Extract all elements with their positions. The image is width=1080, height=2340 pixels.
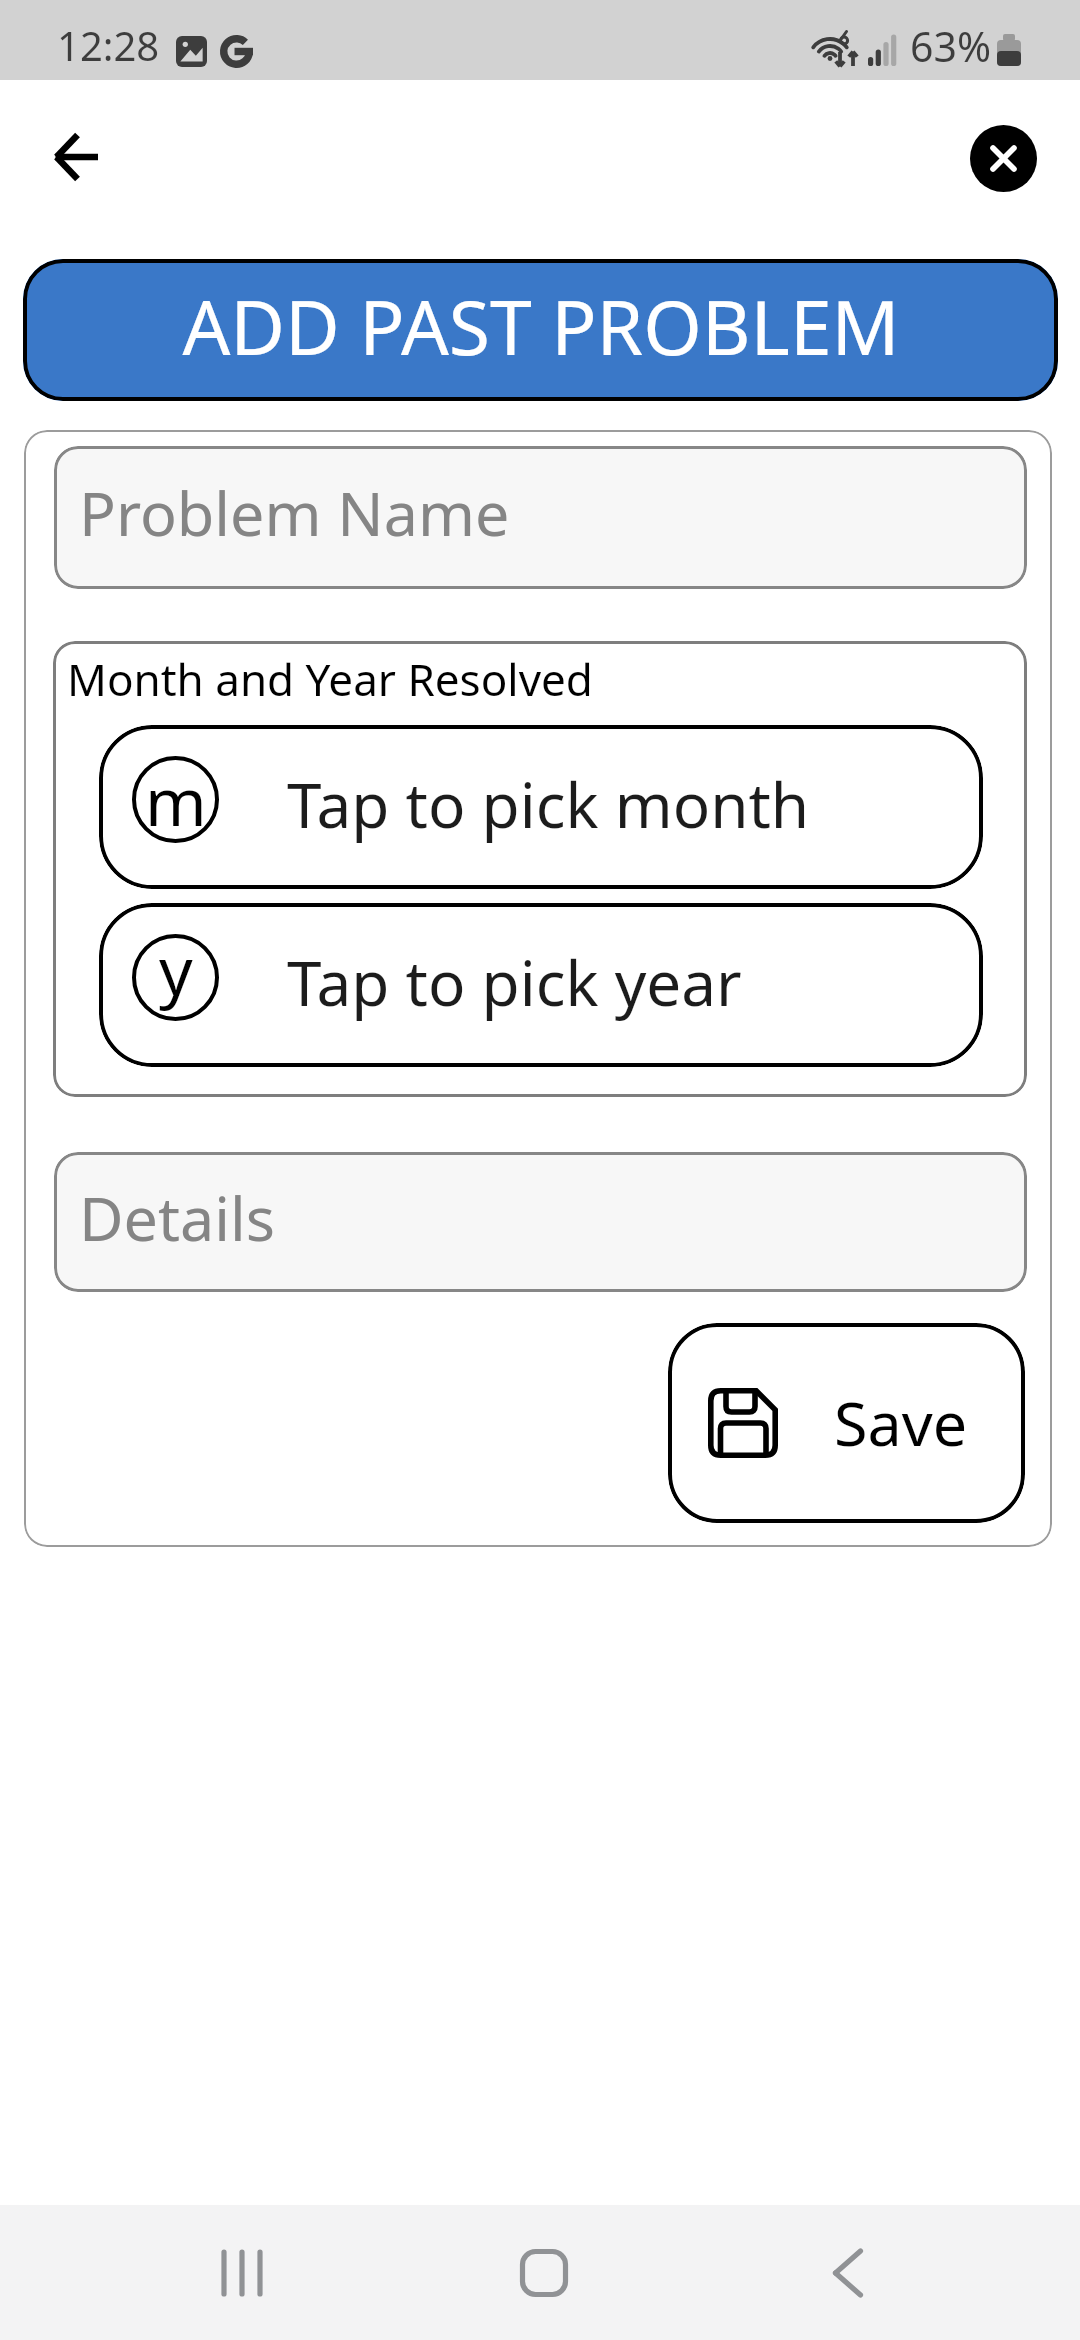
staticText: Details [79,1176,275,1259]
button[interactable]: Problem Name [54,446,1027,589]
staticText: y [159,924,193,1011]
staticText: ADD PAST PROBLEM [182,275,900,377]
staticText: m [145,755,207,842]
button[interactable]: Close [970,125,1037,192]
staticText: Tap to pick year [287,940,742,1024]
button[interactable]: Navigate up [30,109,126,205]
button[interactable]: m [99,725,983,889]
staticText: Save [834,1381,968,1464]
button[interactable]: Details [54,1152,1027,1292]
button[interactable]: ADD PAST PROBLEM [23,259,1058,401]
staticText: 12:28 [57,18,160,72]
button[interactable]: Home [474,2205,614,2340]
staticText: 63% [910,18,991,74]
staticText: Month and Year Resolved [67,649,593,709]
button[interactable]: Recent apps [172,2205,312,2340]
staticText: Problem Name [79,471,510,554]
button[interactable]: y [99,903,983,1067]
button[interactable]: Back [778,2205,918,2340]
button[interactable]: Save [668,1323,1025,1523]
staticText: Tap to pick month [287,762,810,846]
